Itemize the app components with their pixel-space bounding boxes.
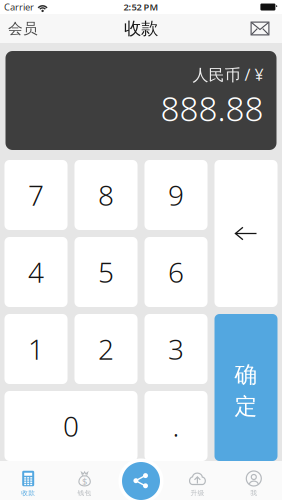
- button[interactable]: .: [144, 391, 207, 461]
- button[interactable]: 5: [74, 237, 137, 307]
- staticText: 收款: [21, 489, 35, 497]
- button[interactable]: Backspace: [214, 160, 277, 307]
- staticText: 确: [234, 361, 257, 388]
- button[interactable]: 我: [226, 461, 282, 500]
- button[interactable]: 会员: [0, 14, 50, 43]
- staticText: 4: [28, 253, 44, 291]
- staticText: 5: [98, 253, 114, 291]
- staticText: 定: [234, 392, 257, 420]
- button[interactable]: 0: [4, 391, 137, 461]
- staticText: 1: [28, 330, 44, 368]
- staticText: 人民币 / ¥: [192, 64, 263, 85]
- button[interactable]: 6: [144, 237, 207, 307]
- staticText: 钱包: [78, 489, 92, 497]
- staticText: 7: [28, 176, 44, 214]
- button[interactable]: 1: [4, 314, 67, 384]
- button[interactable]: 确: [214, 314, 277, 461]
- button[interactable]: 3: [144, 314, 207, 384]
- staticText: 收款: [124, 18, 158, 39]
- staticText: 升级: [190, 489, 204, 497]
- button[interactable]: $: [56, 461, 113, 500]
- staticText: 我: [250, 489, 257, 497]
- staticText: 会员: [8, 19, 38, 37]
- staticText: 2: [98, 330, 114, 368]
- button[interactable]: 收款: [0, 461, 56, 500]
- staticText: 6: [168, 253, 184, 291]
- staticText: .: [172, 407, 179, 445]
- button[interactable]: 7: [4, 160, 67, 230]
- staticText: Carrier: [4, 1, 34, 13]
- staticText: 8: [98, 176, 114, 214]
- staticText: 0: [63, 407, 79, 445]
- staticText: 888.88: [160, 86, 263, 130]
- button[interactable]: 8: [74, 160, 137, 230]
- button[interactable]: 9: [144, 160, 207, 230]
- button[interactable]: Messages: [238, 14, 282, 43]
- staticText: 2:52 PM: [123, 1, 158, 13]
- staticText: $: [82, 475, 87, 487]
- staticText: 9: [168, 176, 184, 214]
- button[interactable]: 4: [4, 237, 67, 307]
- button[interactable]: Share: [118, 458, 164, 500]
- button[interactable]: 升级: [169, 461, 226, 500]
- button[interactable]: 2: [74, 314, 137, 384]
- staticText: 3: [168, 330, 184, 368]
